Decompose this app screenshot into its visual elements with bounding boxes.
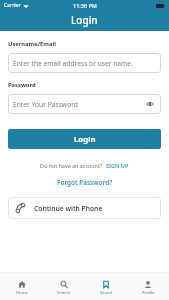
button[interactable]: Saved — [85, 273, 127, 300]
staticText: Password — [8, 81, 36, 89]
button[interactable]: Enter the email address or user name. — [8, 53, 161, 73]
staticText: Login — [74, 134, 96, 145]
button[interactable]: SIGN UP — [106, 162, 129, 169]
staticText: Enter the email address or user name. — [13, 59, 133, 68]
staticText: Search — [57, 290, 71, 296]
staticText: Username/Email — [8, 40, 56, 48]
staticText: SIGN UP — [106, 162, 129, 169]
button[interactable]: Profile — [127, 273, 169, 300]
staticText: Saved — [100, 290, 112, 296]
button[interactable]: Continue with Phone — [8, 197, 161, 219]
staticText: Continue with Phone — [34, 204, 103, 213]
button[interactable]: Show password — [144, 98, 156, 110]
staticText: Login — [71, 13, 98, 27]
button[interactable]: Home — [0, 273, 43, 300]
staticText: Home — [16, 290, 28, 296]
staticText: Do not have an account? — [40, 162, 103, 169]
staticText: Enter Your Password — [13, 100, 78, 109]
button[interactable]: Forgot Password? — [57, 178, 113, 187]
staticText: 11:36 PM — [73, 2, 97, 9]
staticText: Carrier — [4, 2, 21, 9]
staticText: Profile — [142, 290, 155, 296]
button[interactable]: Login — [8, 129, 161, 149]
button[interactable]: Search — [43, 273, 85, 300]
button[interactable]: Enter Your Password — [8, 94, 161, 114]
staticText: Forgot Password? — [57, 178, 113, 187]
